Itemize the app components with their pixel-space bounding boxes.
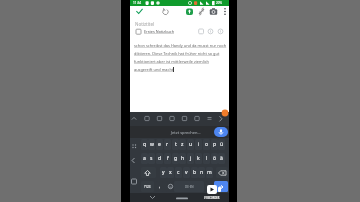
button[interactable]: ?123 [141,181,154,192]
button[interactable] [169,115,178,124]
button[interactable] [144,115,153,124]
button[interactable] [182,115,191,124]
staticText: u [189,141,193,148]
button[interactable] [222,7,228,16]
button[interactable] [217,115,226,124]
staticText: i [198,141,200,148]
staticText: Jetzt sprechen... [171,130,201,135]
staticText: c [177,169,180,176]
staticText: schon schreibst das Handy und da musst n… [134,43,227,48]
button[interactable]: v [183,167,190,178]
button[interactable] [141,167,156,178]
button[interactable] [166,181,174,192]
button[interactable]: ü [218,139,225,150]
button[interactable] [214,181,228,192]
staticText: . [208,183,210,190]
staticText: ä [220,155,223,162]
button[interactable] [130,156,139,166]
button[interactable]: Erstes Notizbuch [130,28,229,37]
button[interactable]: x [167,167,174,178]
staticText: k [197,155,200,162]
button[interactable]: l [203,153,210,164]
staticText: y [162,169,165,176]
button[interactable]: z [179,139,186,150]
staticText: b [193,169,197,176]
button[interactable]: q [141,139,148,150]
staticText: l [206,155,208,162]
staticText: V RECORDER [204,196,220,199]
staticText: v [185,169,188,176]
button[interactable] [161,7,170,16]
staticText: ü [220,141,224,148]
button[interactable]: k [195,153,202,164]
staticText: r [166,141,169,148]
button[interactable]: a [141,153,148,164]
staticText: 11:34 [133,1,142,5]
staticText: diktieren. Diese Technik hat früher nich… [134,51,220,56]
button[interactable]: t [172,139,179,150]
staticText: m [207,169,212,176]
staticText: f [167,155,169,162]
staticText: s [150,155,153,162]
button[interactable]: m [206,167,213,178]
staticText: z [181,141,184,148]
staticText: d [158,155,162,162]
staticText: x [169,169,172,176]
button[interactable]: . [206,181,212,192]
staticText: e [158,141,161,148]
staticText: ausgereift und macht [134,67,174,72]
staticText: , [159,183,161,190]
staticText: 20% [216,1,222,5]
staticText: ?123 [144,185,151,189]
button[interactable]: u [187,139,194,150]
button[interactable]: d [156,153,163,164]
button[interactable]: n [198,167,205,178]
staticText: p [213,141,217,148]
button[interactable] [197,7,206,16]
button[interactable]: f [164,153,171,164]
staticText: h [181,155,185,162]
staticText: Erstes Notizbuch [144,29,174,34]
button[interactable] [130,115,139,124]
button[interactable]: ö [211,153,218,164]
staticText: w [150,141,154,148]
staticText: t [175,141,177,148]
staticText: j [190,155,192,162]
staticText: q [143,141,147,148]
button[interactable]: g [172,153,179,164]
button[interactable] [221,109,229,117]
button[interactable] [194,115,203,124]
staticText: ö [213,155,217,162]
button[interactable] [130,142,139,152]
button[interactable] [130,176,139,186]
button[interactable] [185,7,194,16]
button[interactable]: p [211,139,218,150]
button[interactable] [216,167,228,178]
button[interactable] [209,7,218,16]
button[interactable]: , [156,181,163,192]
staticText: DE·EN [185,185,194,189]
button[interactable]: o [203,139,210,150]
button[interactable]: s [148,153,155,164]
button[interactable] [135,7,144,16]
staticText: o [205,141,209,148]
button[interactable] [214,127,228,137]
button[interactable]: w [148,139,155,150]
button[interactable]: e [156,139,163,150]
staticText: g [174,155,178,162]
button[interactable] [147,193,158,202]
button[interactable]: ä [218,153,225,164]
button[interactable]: h [179,153,186,164]
button[interactable] [173,193,191,202]
button[interactable]: i [195,139,202,150]
button[interactable]: c [175,167,182,178]
staticText: Notiztitel [135,21,155,27]
button[interactable] [205,115,214,124]
button[interactable]: b [191,167,198,178]
button[interactable] [157,115,166,124]
button[interactable]: r [164,139,171,150]
button[interactable]: DE·EN [174,181,204,192]
staticText: a [143,155,146,162]
button[interactable]: j [187,153,194,164]
button[interactable]: y [160,167,167,178]
